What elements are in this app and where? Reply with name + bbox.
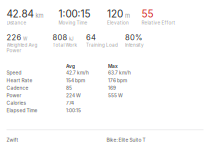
staticText: 169 [108,85,116,91]
staticText: 63.7 km/h [108,70,131,76]
staticText: 42.84 [6,8,33,20]
staticText: Intensity [125,42,144,48]
staticText: Power [6,93,21,98]
staticText: 64 [86,33,96,42]
staticText: Zwift [6,137,18,143]
staticText: Bike: Elite Suito T [106,137,145,143]
staticText: Relative Effort [141,20,175,26]
staticText: 226 [6,33,21,42]
staticText: Elapsed Time [6,108,37,113]
staticText: 154 bpm [66,77,85,83]
staticText: Weighted Avg Power [6,42,37,53]
staticText: km [35,12,43,19]
staticText: Speed [6,70,21,76]
staticText: Elevation [107,20,129,26]
staticText: 176 bpm [108,77,127,83]
staticText: 1:00:15 [66,108,81,113]
staticText: 1:00:15 [58,8,90,20]
staticText: 120 [107,8,123,20]
staticText: Max [108,63,118,69]
staticText: 85 [66,85,72,91]
staticText: W [23,36,27,41]
staticText: 224 W [66,93,81,98]
staticText: Distance [6,20,26,26]
staticText: Total Work [52,42,77,48]
staticText: 80% [125,33,142,42]
staticText: Training Load [86,42,118,48]
staticText: 42.7 km/h [66,70,89,76]
staticText: Cadence [6,85,28,91]
staticText: Calories [6,100,26,106]
staticText: kJ [69,36,74,41]
staticText: Avg [66,63,75,69]
staticText: m [125,12,130,19]
staticText: 55 [141,8,153,20]
staticText: Moving Time [58,20,87,26]
staticText: 555 W [108,93,123,98]
staticText: 774 [66,100,74,106]
staticText: 808 [52,33,67,42]
staticText: Heart Rate [6,77,32,83]
